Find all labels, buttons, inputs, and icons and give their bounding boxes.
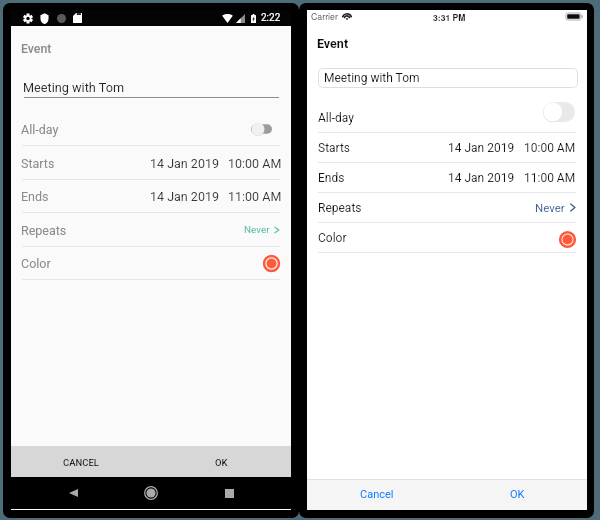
button[interactable]: All-day [11, 113, 291, 146]
button[interactable]: All-day [318, 103, 576, 133]
staticText: Meeting with Tom [23, 80, 125, 95]
staticText: Meeting with Tom [324, 71, 420, 85]
staticText: Ends [21, 189, 49, 204]
staticText: Starts [318, 141, 351, 155]
button[interactable]: Ends [11, 180, 291, 213]
staticText: 10:00 AM [524, 141, 576, 155]
staticText: Event [21, 42, 52, 56]
button[interactable]: Starts [11, 147, 291, 180]
staticText: Carrier [311, 10, 338, 23]
button[interactable]: Cancel [307, 479, 447, 510]
button[interactable]: CANCEL [11, 446, 151, 478]
button[interactable]: Ends [318, 163, 576, 193]
button[interactable]: Recents [221, 477, 237, 509]
staticText: All-day [318, 111, 354, 125]
staticText: 14 Jan 2019 [448, 141, 515, 155]
staticText: 14 Jan 2019 [448, 171, 515, 185]
staticText: 11:00 AM [524, 171, 576, 185]
button[interactable]: Meeting with Tom [23, 80, 278, 102]
staticText: Repeats [21, 223, 67, 238]
button[interactable]: Meeting with Tom [318, 68, 578, 88]
staticText: OK [510, 488, 525, 501]
button[interactable]: Repeats [318, 193, 576, 223]
staticText: 14 Jan 2019 [150, 189, 219, 204]
staticText: 10:00 AM [228, 156, 282, 171]
staticText: OK [215, 457, 228, 468]
staticText: Never [535, 201, 565, 214]
button[interactable]: Repeats [11, 214, 291, 247]
button[interactable]: Color [318, 223, 576, 253]
staticText: CANCEL [63, 457, 99, 468]
staticText: Starts [21, 156, 55, 171]
button[interactable]: Back [66, 477, 81, 509]
staticText: 3:31 PM [433, 11, 466, 23]
staticText: Cancel [360, 488, 394, 501]
button[interactable]: Starts [318, 133, 576, 163]
button[interactable]: OK [447, 479, 587, 510]
staticText: Never [244, 224, 270, 236]
staticText: Ends [318, 171, 345, 185]
button[interactable]: OK [151, 446, 291, 478]
button[interactable]: Home [143, 477, 159, 509]
button[interactable]: Color [11, 247, 291, 280]
staticText: Repeats [318, 201, 362, 215]
staticText: Event [317, 36, 349, 51]
staticText: Color [318, 231, 347, 245]
staticText: Color [21, 256, 51, 271]
staticText: 14 Jan 2019 [150, 156, 219, 171]
staticText: All-day [21, 122, 59, 137]
staticText: 11:00 AM [228, 189, 282, 204]
staticText: 2:22 [261, 12, 281, 24]
